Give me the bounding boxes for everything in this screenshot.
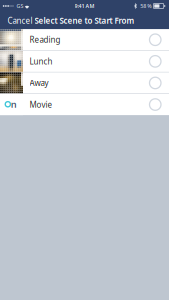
staticText: 58 % bbox=[140, 2, 151, 10]
button[interactable]: Lunch bbox=[0, 51, 169, 72]
staticText: Select Scene to Start From bbox=[34, 15, 134, 26]
button[interactable]: Reading bbox=[0, 29, 169, 50]
staticText: Lunch bbox=[29, 56, 52, 67]
staticText: Reading bbox=[29, 34, 60, 45]
staticText: 9:41 AM bbox=[74, 2, 94, 10]
staticText: n bbox=[11, 98, 17, 110]
button[interactable]: Cancel bbox=[0, 12, 36, 29]
staticText: Away bbox=[29, 78, 48, 88]
staticText: Movie bbox=[29, 99, 52, 110]
button[interactable]: n bbox=[0, 94, 169, 115]
staticText: GS bbox=[16, 2, 23, 10]
button[interactable]: Away bbox=[0, 72, 169, 93]
staticText: Cancel bbox=[7, 15, 32, 26]
